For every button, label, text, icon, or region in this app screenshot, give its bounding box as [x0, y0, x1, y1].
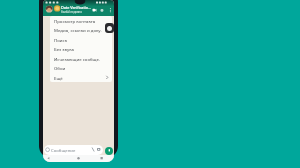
button[interactable]: Ещё [50, 73, 112, 82]
button[interactable] [75, 155, 83, 161]
staticText: Обои [54, 65, 66, 71]
staticText: Исчезающие сообще. [54, 56, 101, 62]
staticText: Ещё [54, 75, 63, 81]
button[interactable] [91, 7, 98, 14]
button[interactable]: Поиск [50, 35, 112, 44]
staticText: Поиск [54, 37, 68, 43]
button[interactable]: Сообщение [44, 145, 103, 155]
staticText: Без звука [54, 46, 74, 52]
button[interactable] [43, 6, 114, 16]
staticText: был(а) недавно [61, 10, 82, 14]
button[interactable] [108, 7, 114, 14]
button[interactable]: Без звука [50, 44, 112, 53]
staticText: Date Verificatio... [61, 5, 92, 10]
button[interactable]: Просмотр контакта [50, 16, 112, 25]
button[interactable] [105, 147, 113, 155]
staticText: Медиа, ссылки и доку. [54, 27, 102, 33]
staticText: Сообщение [51, 147, 76, 153]
button[interactable]: Обои [50, 63, 112, 72]
button[interactable] [105, 23, 114, 33]
button[interactable] [99, 7, 106, 14]
button[interactable] [45, 155, 53, 161]
button[interactable]: Медиа, ссылки и доку. [50, 25, 112, 34]
staticText: Просмотр контакта [54, 18, 96, 24]
button[interactable] [98, 155, 106, 161]
button[interactable]: Исчезающие сообще. [50, 54, 112, 63]
